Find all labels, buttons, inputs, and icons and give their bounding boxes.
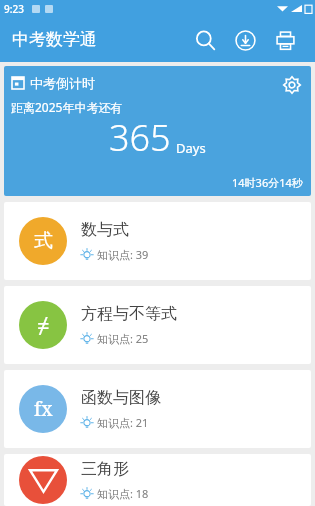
staticText: 数与式 [81, 220, 129, 240]
button[interactable]: ≠ [4, 286, 311, 364]
button[interactable]: Download [225, 20, 265, 60]
staticText: 365 [109, 113, 171, 162]
staticText: Days [176, 139, 206, 157]
staticText: 知识点: 18 [97, 486, 149, 501]
staticText: 中考数学通 [12, 29, 97, 50]
staticText: 中考倒计时 [30, 75, 95, 91]
staticText: ≠ [37, 310, 50, 340]
button[interactable]: 三角形 [4, 454, 311, 506]
staticText: 知识点: 25 [97, 331, 149, 346]
button[interactable]: Print [265, 20, 305, 60]
staticText: 距离2025年中考还有 [11, 99, 123, 115]
staticText: 9:23 [4, 2, 24, 16]
staticText: fx [34, 396, 53, 422]
staticText: 函数与图像 [81, 388, 161, 408]
staticText: 知识点: 39 [97, 247, 149, 262]
button[interactable]: 式 [4, 202, 311, 280]
staticText: 方程与不等式 [81, 304, 177, 324]
staticText: 知识点: 21 [97, 415, 149, 430]
staticText: 14时36分14秒 [232, 175, 303, 190]
button[interactable]: Settings [279, 72, 305, 98]
staticText: 三角形 [81, 459, 129, 479]
staticText: 式 [34, 229, 53, 253]
button[interactable]: Search [185, 20, 225, 60]
button[interactable]: fx [4, 370, 311, 448]
button[interactable]: 中考倒计时 [4, 66, 311, 196]
